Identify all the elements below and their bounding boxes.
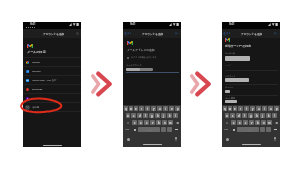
- button[interactable]: Comma: [167, 127, 172, 132]
- button[interactable]: Key p: [175, 106, 180, 111]
- button[interactable]: Shift: [223, 120, 230, 125]
- button[interactable]: Key j: [260, 113, 265, 118]
- button[interactable]: Key h: [155, 113, 160, 118]
- staticText: y: [252, 107, 254, 111]
- button[interactable]: Key w: [228, 106, 232, 111]
- button[interactable]: Key d: [137, 113, 142, 118]
- button[interactable]: Key u: [157, 106, 162, 111]
- button[interactable]: Backspace: [174, 120, 180, 125]
- button[interactable]: Symbols: [223, 127, 230, 132]
- staticText: p: [276, 107, 278, 111]
- button[interactable]: Key a: [225, 113, 229, 118]
- button[interactable]: Key i: [163, 106, 168, 111]
- button[interactable]: Outlook: [23, 67, 81, 76]
- staticText: Exchange: [32, 88, 43, 91]
- button[interactable]: Key y: [151, 106, 156, 111]
- button[interactable]: Key b: [156, 120, 161, 125]
- button[interactable]: Emoji: [127, 138, 130, 141]
- button[interactable]: アカウントを追加: [23, 29, 81, 38]
- button[interactable]: Key b: [255, 120, 260, 125]
- button[interactable]: Key o: [169, 106, 174, 111]
- button[interactable]: 戻る: [223, 32, 231, 35]
- staticText: ?123: [125, 128, 130, 131]
- button[interactable]: Key f: [242, 113, 247, 118]
- button[interactable]: Key c: [243, 120, 248, 125]
- button[interactable]: Key x: [237, 120, 242, 125]
- button[interactable]: Key t: [244, 106, 249, 111]
- button[interactable]: Google: [23, 58, 81, 67]
- staticText: アカウントを追加: [241, 32, 263, 35]
- button[interactable]: Enter: [173, 127, 180, 132]
- staticText: d: [238, 114, 240, 118]
- button[interactable]: Shift: [124, 120, 131, 125]
- staticText: 9:41: [130, 22, 136, 26]
- button[interactable]: 戻る: [124, 32, 132, 35]
- button[interactable]: 次へ: [175, 32, 180, 35]
- button[interactable]: Key l: [173, 113, 178, 118]
- button[interactable]: Help: [76, 32, 79, 35]
- button[interactable]: Key i: [262, 106, 267, 111]
- button[interactable]: Key g: [248, 113, 253, 118]
- button[interactable]: Emoji: [226, 138, 229, 141]
- button[interactable]: [222, 73, 280, 85]
- button[interactable]: 次へ: [274, 32, 279, 35]
- button[interactable]: Backspace: [273, 120, 279, 125]
- button[interactable]: Key e: [233, 106, 237, 111]
- button[interactable]: Key k: [266, 113, 271, 118]
- staticText: Outlook: [32, 70, 41, 73]
- button[interactable]: Key v: [150, 120, 155, 125]
- button[interactable]: Key z: [132, 120, 137, 125]
- button[interactable]: Voice input: [175, 137, 177, 141]
- button[interactable]: Key q: [124, 106, 128, 111]
- button[interactable]: Enter: [272, 127, 279, 132]
- staticText: s: [232, 114, 234, 118]
- button[interactable]: Key k: [167, 113, 172, 118]
- button[interactable]: Key y: [250, 106, 255, 111]
- button[interactable]: Period: [161, 127, 166, 132]
- button[interactable]: Key t: [145, 106, 150, 111]
- button[interactable]: Symbols: [124, 127, 131, 132]
- button[interactable]: Key f: [143, 113, 148, 118]
- button[interactable]: Key m: [267, 120, 272, 125]
- button[interactable]: Key g: [149, 113, 154, 118]
- button[interactable]: その他: [23, 103, 81, 112]
- button[interactable]: Yahoo! Mail、AOL など: [23, 76, 81, 85]
- button[interactable]: [222, 95, 280, 106]
- button[interactable]: Key h: [254, 113, 259, 118]
- button[interactable]: Language: [231, 127, 236, 132]
- button[interactable]: Comma: [266, 127, 271, 132]
- button[interactable]: [222, 51, 280, 71]
- button[interactable]: Key r: [139, 106, 144, 111]
- button[interactable]: Key m: [168, 120, 173, 125]
- button[interactable]: Period: [260, 127, 265, 132]
- button[interactable]: Key v: [249, 120, 254, 125]
- button[interactable]: Key j: [161, 113, 166, 118]
- button[interactable]: Voice input: [274, 137, 276, 141]
- button[interactable]: Key w: [129, 106, 133, 111]
- button[interactable]: Key z: [231, 120, 236, 125]
- staticText: ヘルプ: [225, 64, 231, 66]
- button[interactable]: Key e: [134, 106, 138, 111]
- button[interactable]: [222, 85, 280, 96]
- button[interactable]: Key o: [268, 106, 273, 111]
- button[interactable]: Key x: [138, 120, 143, 125]
- button[interactable]: Key s: [230, 113, 235, 118]
- button[interactable]: Key c: [144, 120, 149, 125]
- button[interactable]: Key n: [261, 120, 266, 125]
- staticText: u: [258, 107, 260, 111]
- button[interactable]: Key s: [131, 113, 136, 118]
- button[interactable]: Key u: [256, 106, 261, 111]
- staticText: Google: [32, 61, 40, 64]
- button[interactable]: Exchange: [23, 85, 81, 94]
- button[interactable]: Key r: [238, 106, 243, 111]
- button[interactable]: Key p: [274, 106, 279, 111]
- button[interactable]: Key q: [223, 106, 227, 111]
- button[interactable]: Key d: [236, 113, 241, 118]
- button[interactable]: Key a: [126, 113, 130, 118]
- button[interactable]: Language: [132, 127, 137, 132]
- button[interactable]: Key n: [162, 120, 167, 125]
- button[interactable]: Yahoo: [23, 94, 81, 103]
- button[interactable]: Key l: [272, 113, 277, 118]
